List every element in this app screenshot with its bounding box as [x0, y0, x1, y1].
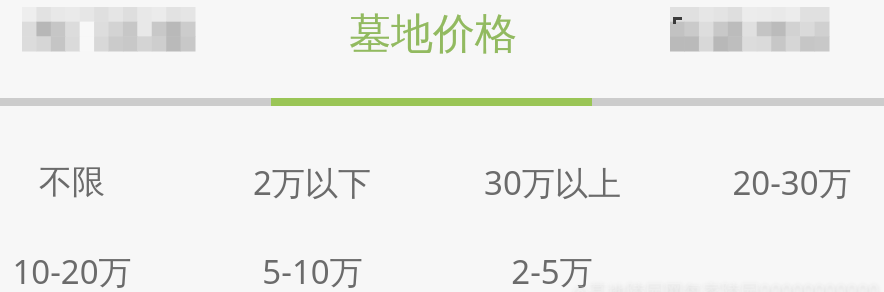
staticText: 30万以上	[484, 160, 621, 205]
button[interactable]: 30万以上	[432, 151, 672, 213]
button[interactable]: 5-10万	[192, 240, 432, 292]
staticText: 10-20万	[12, 249, 132, 292]
button[interactable]: 2万以下	[192, 151, 432, 213]
button[interactable]: More options	[670, 7, 829, 51]
staticText: 墓地价格	[349, 8, 517, 61]
staticText: ◎墓地陵园网每家陵园00000000000	[572, 278, 880, 292]
button[interactable]: 2-5万	[432, 240, 672, 292]
button[interactable]: Back	[22, 7, 195, 51]
staticText: 2万以下	[253, 160, 371, 205]
button[interactable]: 10-20万	[0, 240, 192, 292]
staticText: 2-5万	[511, 249, 593, 292]
staticText: 5-10万	[262, 249, 363, 292]
staticText: 20-30万	[732, 160, 852, 205]
staticText: 不限	[39, 161, 105, 203]
button[interactable]: 不限	[0, 151, 192, 213]
button[interactable]: 20-30万	[672, 151, 884, 213]
button[interactable]: 墓地价格	[349, 8, 517, 61]
